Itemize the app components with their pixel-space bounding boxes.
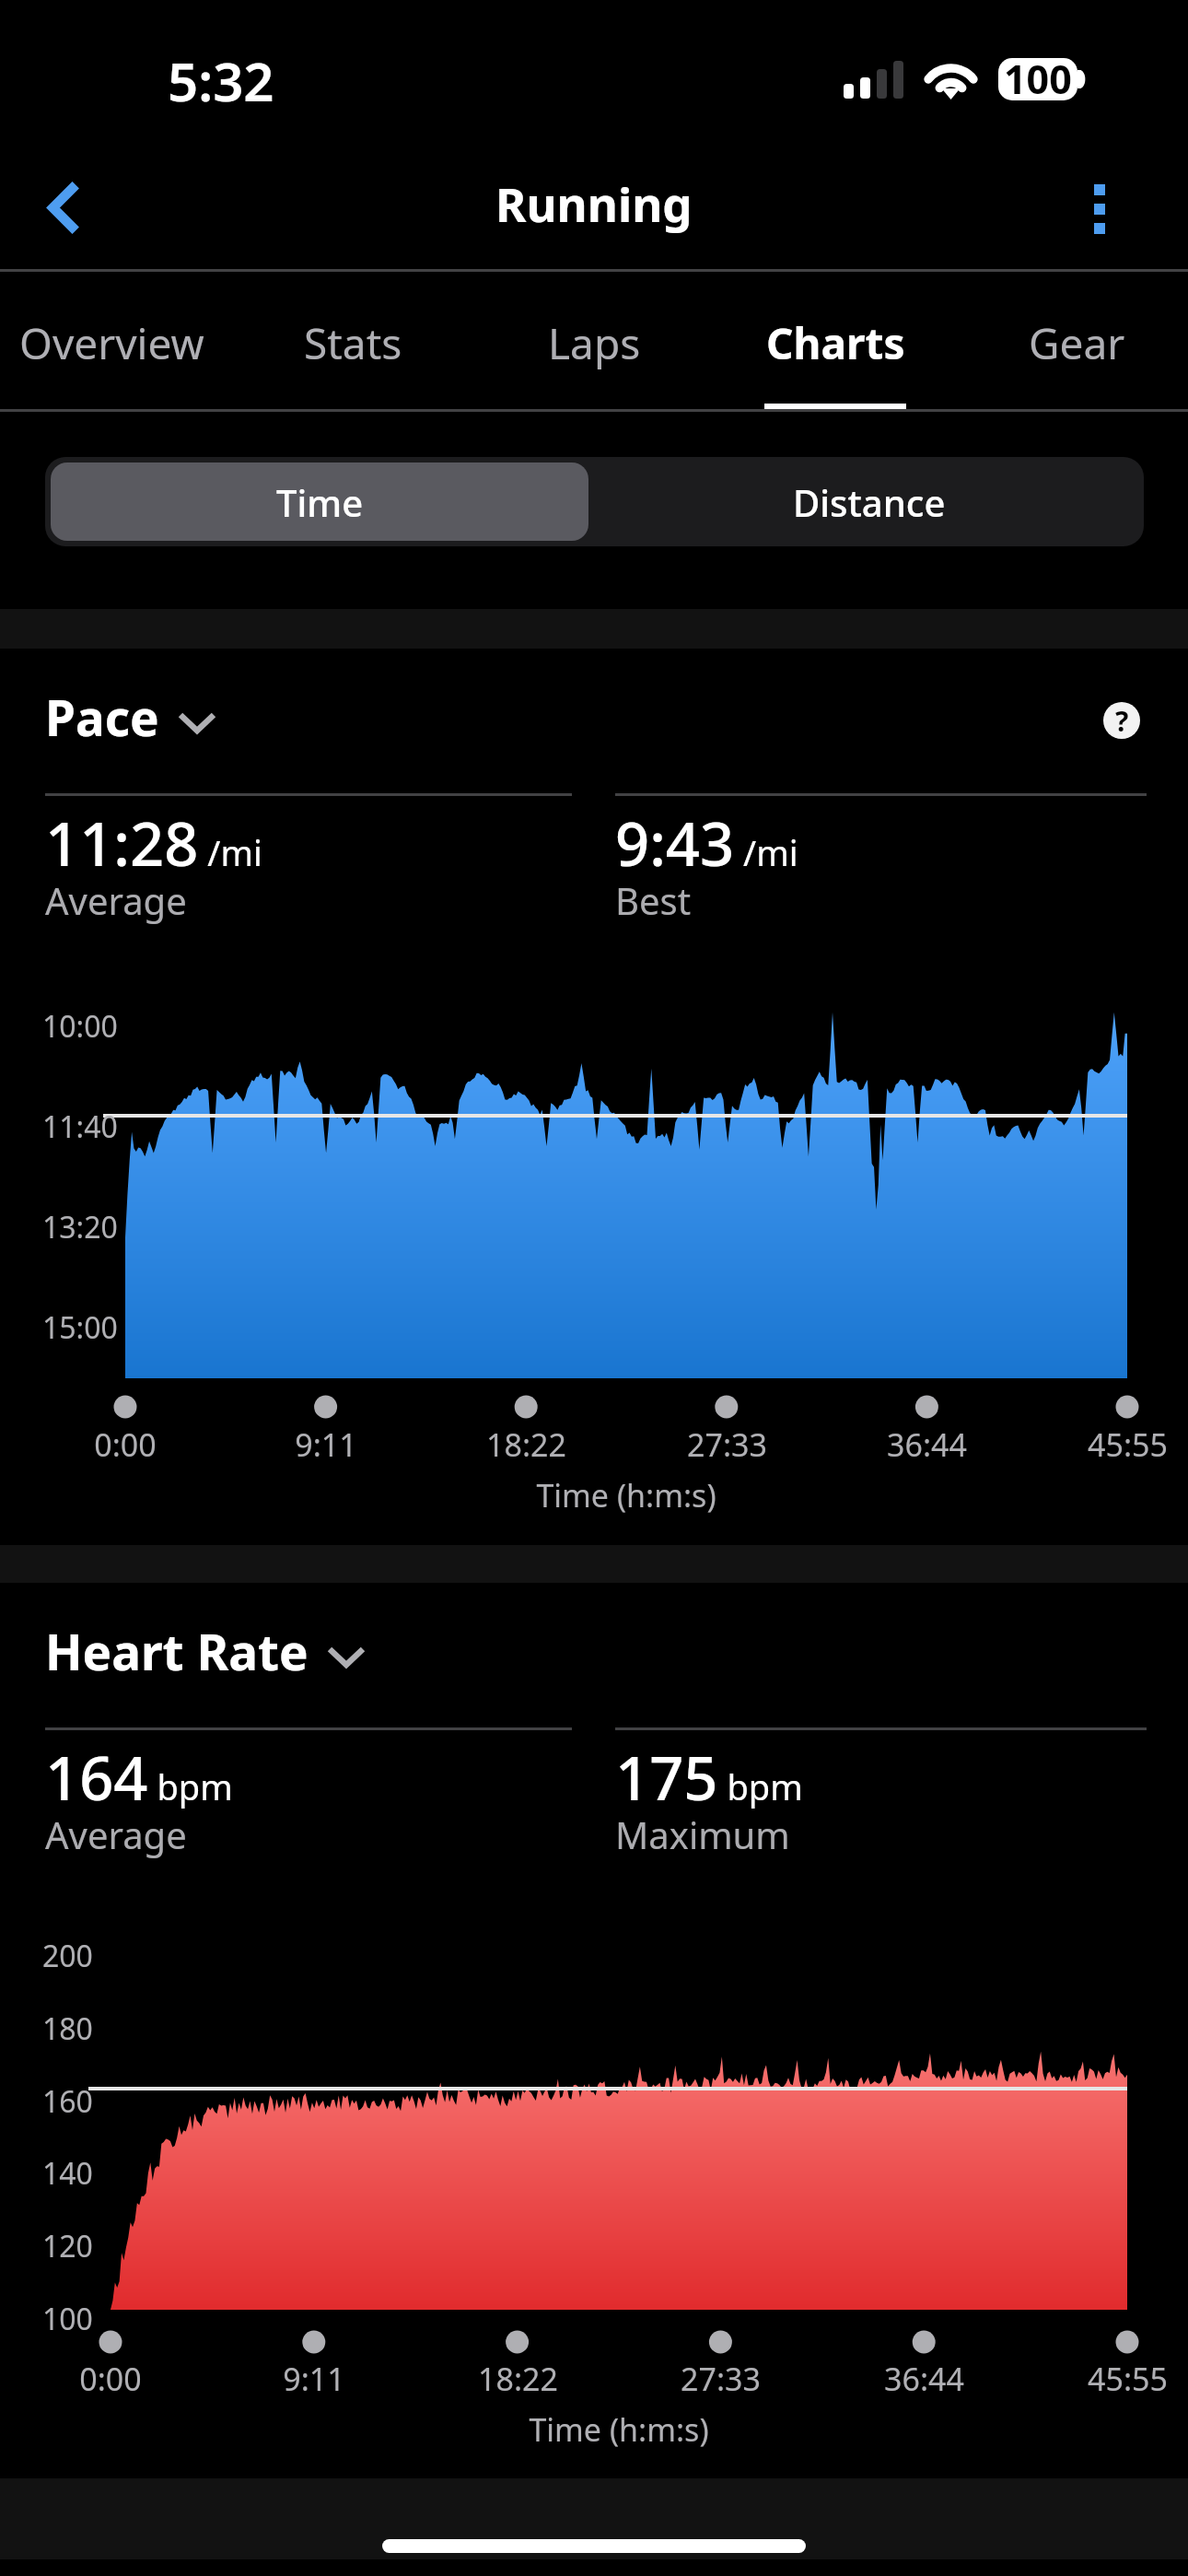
staticText: 15:00 bbox=[42, 1307, 118, 1348]
staticText: 0:00 bbox=[94, 1423, 157, 1466]
button[interactable]: Time bbox=[51, 463, 588, 541]
staticText: ? bbox=[1115, 702, 1129, 739]
staticText: 45:55 bbox=[1088, 1423, 1168, 1466]
button[interactable]: More options bbox=[1044, 154, 1155, 264]
staticText: Average bbox=[45, 875, 187, 925]
staticText: Overview bbox=[19, 314, 204, 372]
staticText: 9:11 bbox=[295, 1423, 357, 1466]
button[interactable]: Stats bbox=[232, 272, 473, 412]
staticText: 5:32 bbox=[168, 44, 274, 117]
staticText: Heart Rate bbox=[45, 1618, 309, 1684]
staticText: Gear bbox=[1029, 314, 1125, 372]
button[interactable]: Help bbox=[1103, 702, 1140, 739]
staticText: 11:28 /mi bbox=[45, 802, 262, 884]
staticText: Stats bbox=[304, 314, 402, 372]
staticText: 10:00 bbox=[42, 1006, 118, 1047]
staticText: Maximum bbox=[615, 1809, 790, 1859]
staticText: Pace bbox=[45, 684, 159, 750]
staticText: 18:22 bbox=[486, 1423, 566, 1466]
staticText: Time bbox=[276, 477, 364, 527]
staticText: Running bbox=[495, 171, 693, 235]
button[interactable]: Charts bbox=[715, 272, 956, 412]
staticText: 100 bbox=[42, 2299, 93, 2339]
staticText: 100 bbox=[1004, 58, 1072, 94]
staticText: Charts bbox=[766, 314, 905, 372]
staticText: Distance bbox=[793, 477, 946, 527]
button[interactable]: Heart Rate bbox=[45, 1618, 366, 1684]
staticText: 11:40 bbox=[42, 1107, 118, 1147]
staticText: 200 bbox=[42, 1936, 93, 1976]
staticText: 9:43 /mi bbox=[615, 802, 798, 884]
staticText: 9:11 bbox=[283, 2358, 345, 2400]
staticText: 36:44 bbox=[884, 2358, 964, 2400]
staticText: Average bbox=[45, 1809, 187, 1859]
staticText: 0:00 bbox=[79, 2358, 142, 2400]
button[interactable]: Back bbox=[7, 152, 118, 263]
staticText: 180 bbox=[42, 2008, 93, 2049]
staticText: 140 bbox=[42, 2153, 93, 2194]
staticText: 27:33 bbox=[681, 2358, 761, 2400]
staticText: 120 bbox=[42, 2226, 93, 2266]
staticText: 45:55 bbox=[1088, 2358, 1168, 2400]
staticText: Time (h:m:s) bbox=[536, 1474, 716, 1516]
staticText: 164 bpm bbox=[45, 1737, 233, 1819]
button[interactable]: Distance bbox=[594, 457, 1144, 546]
staticText: 13:20 bbox=[42, 1207, 118, 1247]
button[interactable]: Pace bbox=[45, 684, 216, 750]
staticText: 36:44 bbox=[887, 1423, 967, 1466]
staticText: 27:33 bbox=[687, 1423, 767, 1466]
staticText: Best bbox=[615, 875, 692, 925]
staticText: 18:22 bbox=[478, 2358, 558, 2400]
staticText: 160 bbox=[42, 2081, 93, 2122]
button[interactable]: Overview bbox=[0, 272, 232, 412]
staticText: Time (h:m:s) bbox=[529, 2408, 709, 2451]
button[interactable]: Laps bbox=[473, 272, 715, 412]
staticText: 175 bpm bbox=[615, 1737, 803, 1819]
button[interactable]: Gear bbox=[956, 272, 1188, 412]
staticText: Laps bbox=[548, 314, 641, 372]
